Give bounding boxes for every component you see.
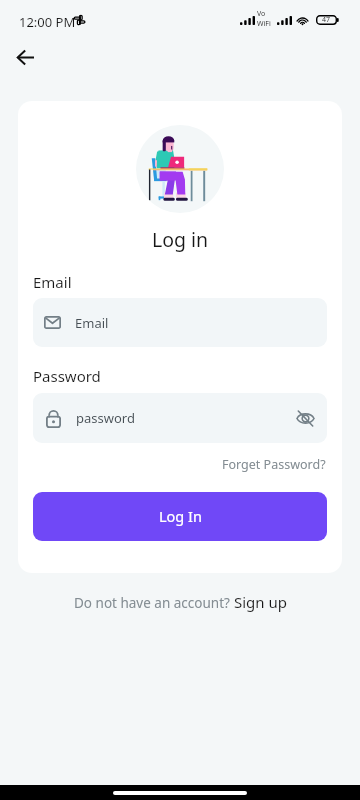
- staticText: 12:00 PM: [19, 13, 76, 31]
- button[interactable]: Log In: [33, 492, 327, 541]
- button[interactable]: Back: [4, 36, 47, 79]
- staticText: Vo: [257, 9, 266, 19]
- button[interactable]: Forget Password?: [18, 456, 326, 473]
- staticText: WiFi: [257, 19, 271, 29]
- staticText: Sign up: [234, 592, 287, 612]
- button[interactable]: password: [33, 393, 327, 443]
- staticText: Log In: [159, 506, 202, 526]
- staticText: password: [76, 409, 135, 427]
- button[interactable]: Email: [33, 298, 327, 347]
- staticText: Log in: [152, 226, 209, 253]
- staticText: Forget Password?: [222, 456, 326, 473]
- staticText: Password: [33, 366, 101, 386]
- button[interactable]: Sign up: [234, 592, 287, 612]
- staticText: 47: [322, 15, 331, 25]
- staticText: Email: [75, 314, 109, 332]
- staticText: Do not have an account?: [74, 594, 234, 612]
- staticText: Email: [33, 272, 72, 292]
- button[interactable]: Show password: [296, 410, 315, 427]
